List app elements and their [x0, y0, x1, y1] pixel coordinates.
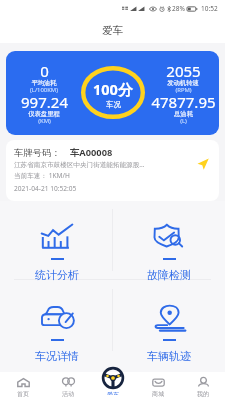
button[interactable]: 车况详情 — [17, 305, 97, 363]
other: Mall — [152, 378, 165, 387]
staticText: 车况详情 — [35, 349, 79, 363]
staticText: 当前车速： 1KM/H — [14, 171, 70, 180]
staticText: 故障检测 — [147, 268, 191, 282]
other: Profile — [197, 378, 210, 387]
staticText: 活动 — [62, 390, 74, 398]
other: Navigate — [197, 158, 209, 170]
staticText: 仪表盘里程 — [28, 110, 60, 118]
button[interactable]: Home — [3, 378, 43, 398]
staticText: (L) — [180, 117, 187, 125]
staticText: 10:52 — [201, 4, 218, 13]
button[interactable]: 爱车 — [91, 367, 135, 395]
staticText: 爱车 — [107, 391, 119, 395]
staticText: 商城 — [152, 390, 164, 398]
button[interactable]: Mall — [138, 378, 178, 398]
staticText: 997.24 — [21, 92, 68, 112]
button[interactable]: 车牌号码： — [6, 140, 219, 201]
staticText: 100分 — [93, 79, 133, 99]
staticText: (KM) — [38, 117, 51, 125]
staticText: 首页 — [17, 390, 29, 398]
staticText: 2021-04-21 10:52:05 — [14, 184, 77, 193]
staticText: 统计分析 — [35, 268, 79, 282]
button[interactable]: 0 — [6, 51, 219, 135]
staticText: 0 — [40, 61, 49, 81]
button[interactable]: 统计分析 — [17, 224, 97, 282]
staticText: (L/100KM) — [30, 86, 58, 94]
staticText: 车况 — [106, 100, 121, 109]
staticText: 我的 — [197, 390, 209, 398]
button[interactable]: 车辆轨迹 — [129, 305, 209, 363]
other: Activity — [62, 378, 75, 387]
button[interactable]: Activity — [48, 378, 88, 398]
staticText: 发动机转速 — [167, 79, 199, 87]
staticText: 江苏省南京市鼓楼区中央门街道能拓能源股... — [14, 160, 190, 169]
staticText: 28% — [172, 4, 185, 13]
staticText: 2055 — [166, 61, 201, 81]
button[interactable]: 故障检测 — [129, 224, 209, 282]
staticText: 总油耗 — [174, 110, 193, 118]
staticText: 车辆轨迹 — [147, 349, 191, 363]
staticText: 47877.95 — [151, 92, 216, 112]
button[interactable]: Profile — [183, 378, 223, 398]
staticText: 平均油耗 — [31, 79, 57, 87]
staticText: 车牌号码： — [14, 147, 61, 159]
staticText: 车A00008 — [70, 146, 113, 159]
other: Home — [17, 378, 30, 387]
staticText: 爱车 — [102, 24, 123, 37]
staticText: (RPM) — [175, 86, 192, 94]
